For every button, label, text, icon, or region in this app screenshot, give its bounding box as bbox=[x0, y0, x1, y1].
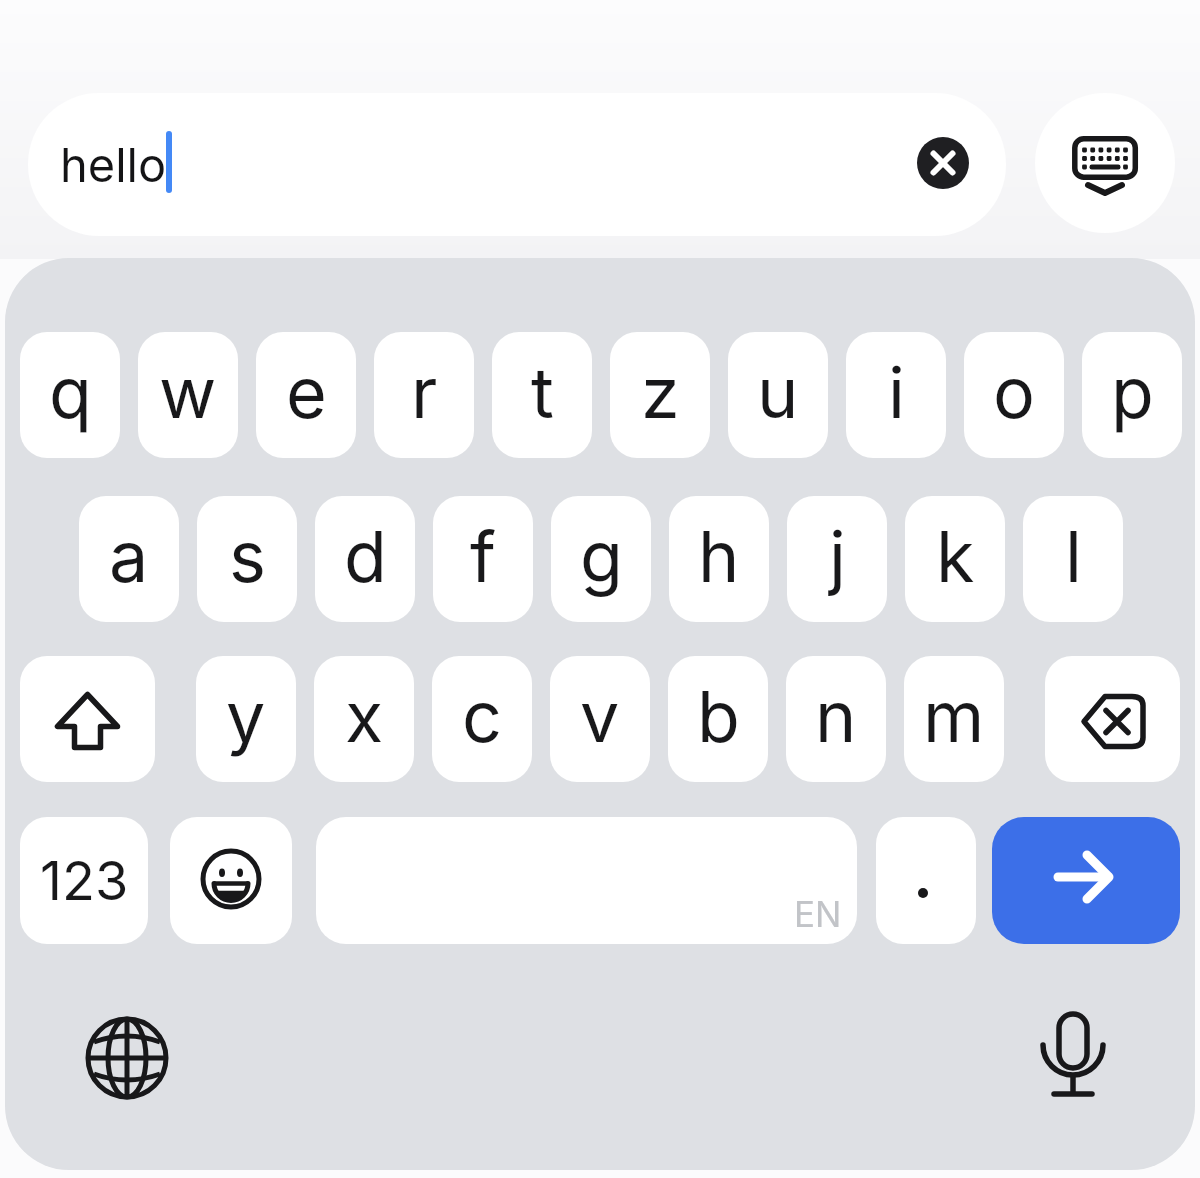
staticText: l bbox=[1065, 514, 1082, 599]
button[interactable]: o bbox=[964, 332, 1064, 458]
button[interactable]: i bbox=[846, 332, 946, 458]
button[interactable]: m bbox=[904, 656, 1004, 782]
staticText: n bbox=[815, 674, 857, 759]
staticText: t bbox=[531, 350, 554, 435]
staticText: h bbox=[698, 514, 740, 599]
staticText: r bbox=[411, 350, 438, 435]
button[interactable]: l bbox=[1023, 496, 1123, 622]
button[interactable] bbox=[876, 817, 976, 944]
staticText: i bbox=[888, 350, 905, 435]
button[interactable]: 123 bbox=[20, 817, 148, 944]
staticText: p bbox=[1111, 350, 1154, 435]
button[interactable]: r bbox=[374, 332, 474, 458]
staticText: u bbox=[757, 350, 799, 435]
button[interactable]: a bbox=[79, 496, 179, 622]
button[interactable]: j bbox=[787, 496, 887, 622]
staticText: k bbox=[936, 514, 975, 599]
staticText: m bbox=[923, 674, 985, 759]
staticText: s bbox=[229, 514, 266, 599]
button[interactable]: g bbox=[551, 496, 651, 622]
button[interactable] bbox=[20, 656, 155, 782]
button[interactable] bbox=[77, 1008, 177, 1108]
staticText: f bbox=[470, 514, 496, 599]
button[interactable]: c bbox=[432, 656, 532, 782]
button[interactable]: s bbox=[197, 496, 297, 622]
button[interactable]: x bbox=[314, 656, 414, 782]
staticText: x bbox=[345, 674, 384, 759]
staticText: j bbox=[829, 514, 846, 599]
staticText: EN bbox=[794, 893, 842, 935]
staticText: a bbox=[109, 514, 149, 599]
staticText: b bbox=[697, 674, 740, 759]
staticText: q bbox=[49, 350, 92, 435]
staticText: z bbox=[641, 350, 680, 435]
button[interactable]: hello bbox=[28, 93, 1006, 236]
button[interactable]: q bbox=[20, 332, 120, 458]
button[interactable]: b bbox=[668, 656, 768, 782]
staticText: 123 bbox=[40, 848, 129, 913]
staticText: g bbox=[580, 514, 623, 599]
button[interactable] bbox=[1035, 93, 1175, 233]
button[interactable] bbox=[1045, 656, 1180, 782]
button[interactable] bbox=[917, 137, 969, 189]
button[interactable] bbox=[992, 817, 1180, 944]
button[interactable]: t bbox=[492, 332, 592, 458]
button[interactable] bbox=[1023, 1003, 1123, 1103]
button[interactable]: d bbox=[315, 496, 415, 622]
button[interactable]: e bbox=[256, 332, 356, 458]
staticText: v bbox=[580, 674, 620, 759]
button[interactable] bbox=[170, 817, 292, 944]
button[interactable]: w bbox=[138, 332, 238, 458]
staticText: w bbox=[159, 350, 217, 435]
button[interactable]: v bbox=[550, 656, 650, 782]
button[interactable]: f bbox=[433, 496, 533, 622]
staticText: d bbox=[344, 514, 387, 599]
button[interactable]: EN bbox=[316, 817, 857, 944]
staticText: c bbox=[462, 674, 502, 759]
staticText: o bbox=[993, 350, 1035, 435]
staticText: hello bbox=[60, 136, 167, 193]
button[interactable]: z bbox=[610, 332, 710, 458]
button[interactable]: h bbox=[669, 496, 769, 622]
button[interactable]: u bbox=[728, 332, 828, 458]
button[interactable]: p bbox=[1082, 332, 1182, 458]
staticText: y bbox=[226, 674, 266, 759]
button[interactable]: n bbox=[786, 656, 886, 782]
staticText: e bbox=[286, 350, 327, 435]
button[interactable]: k bbox=[905, 496, 1005, 622]
button[interactable]: y bbox=[196, 656, 296, 782]
